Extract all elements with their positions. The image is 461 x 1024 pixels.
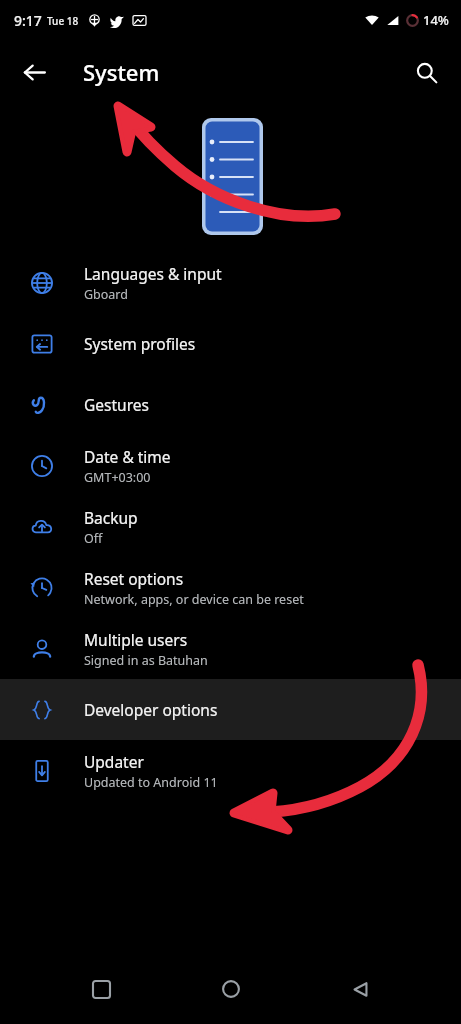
- button[interactable]: Updater: [0, 740, 461, 801]
- staticText: System: [83, 57, 160, 87]
- staticText: Developer options: [84, 699, 218, 720]
- button[interactable]: Back: [332, 961, 388, 1017]
- staticText: Network, apps, or device can be reset: [84, 591, 304, 608]
- staticText: Signed in as Batuhan: [84, 652, 208, 669]
- button[interactable]: Home: [203, 961, 259, 1017]
- staticText: Updated to Android 11: [84, 774, 218, 791]
- staticText: 9:17: [14, 11, 42, 30]
- staticText: GMT+03:00: [84, 469, 151, 486]
- staticText: Multiple users: [84, 629, 188, 650]
- button[interactable]: System profiles: [0, 313, 461, 374]
- staticText: Backup: [84, 507, 138, 528]
- staticText: Tue 18: [47, 14, 79, 28]
- staticText: Gestures: [84, 394, 149, 415]
- staticText: Languages & input: [84, 263, 222, 284]
- staticText: Date & time: [84, 446, 171, 467]
- staticText: Reset options: [84, 568, 184, 589]
- button[interactable]: Recents: [73, 961, 129, 1017]
- staticText: 14%: [423, 11, 449, 29]
- staticText: Off: [84, 530, 103, 547]
- button[interactable]: Backup: [0, 496, 461, 557]
- button[interactable]: Developer options: [0, 679, 461, 740]
- button[interactable]: Languages & input: [0, 252, 461, 313]
- button[interactable]: Reset options: [0, 557, 461, 618]
- button[interactable]: Date & time: [0, 435, 461, 496]
- button[interactable]: Search: [405, 51, 447, 93]
- staticText: System profiles: [84, 333, 196, 354]
- staticText: Updater: [84, 751, 144, 772]
- button[interactable]: Back: [14, 52, 54, 92]
- button[interactable]: Multiple users: [0, 618, 461, 679]
- staticText: Gboard: [84, 286, 128, 303]
- button[interactable]: Gestures: [0, 374, 461, 435]
